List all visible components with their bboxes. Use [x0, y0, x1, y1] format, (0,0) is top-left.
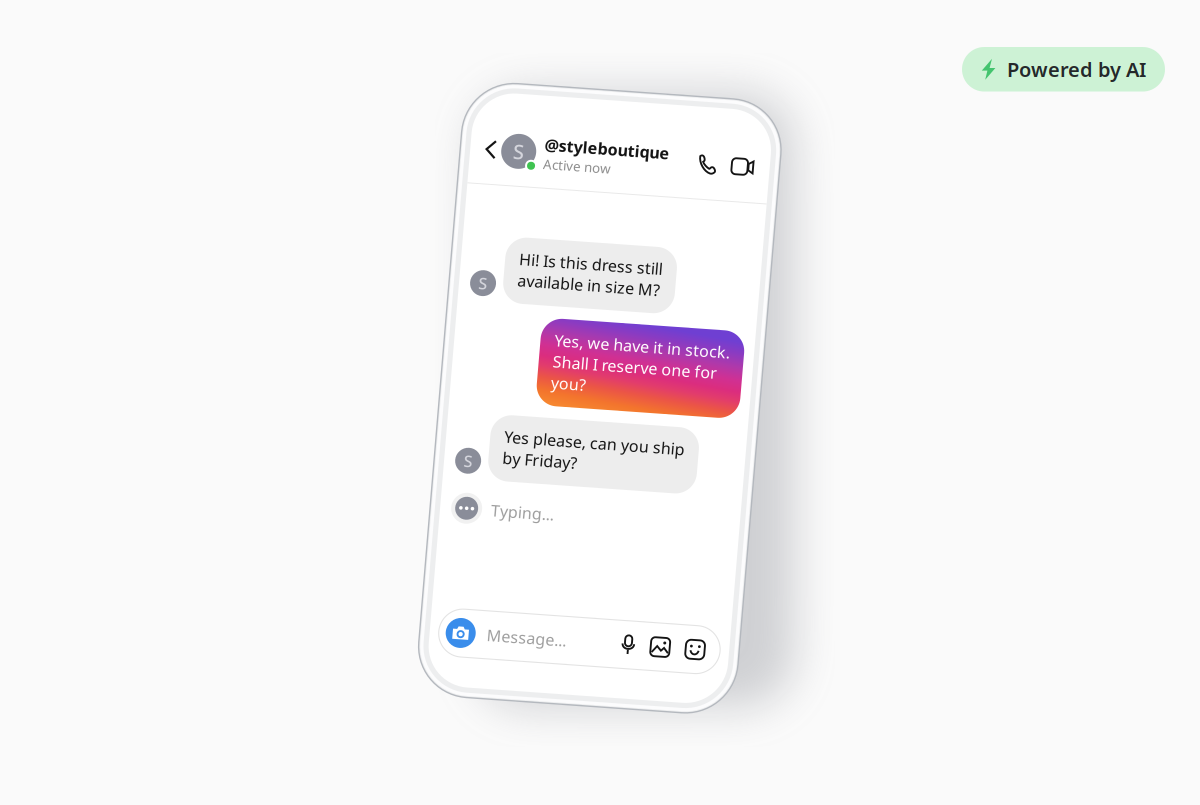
staticText: S [469, 281, 478, 302]
staticText: Yes please, can you ship by Friday? [508, 432, 689, 475]
button[interactable]: Sticker [691, 632, 726, 652]
button[interactable]: Camera [466, 627, 496, 657]
staticText: Typing... [501, 507, 564, 528]
button[interactable]: Video call [696, 149, 734, 166]
staticText: S [469, 459, 478, 480]
button[interactable]: S [481, 138, 649, 177]
staticText: Hi! Is this dress still available in siz… [508, 254, 652, 297]
staticText: Powered by AI [1007, 56, 1146, 83]
button[interactable]: Powered by AI [962, 47, 1165, 92]
staticText: Active now [524, 159, 591, 177]
button[interactable]: Back [460, 148, 481, 167]
button[interactable]: Photo [656, 632, 691, 652]
staticText: Message... [507, 632, 587, 653]
staticText: @styleboutique [524, 138, 649, 159]
button[interactable]: Voice message [642, 632, 656, 652]
staticText: S [493, 144, 504, 171]
staticText: Yes, we have it in stock. Shall I reserv… [550, 333, 726, 396]
